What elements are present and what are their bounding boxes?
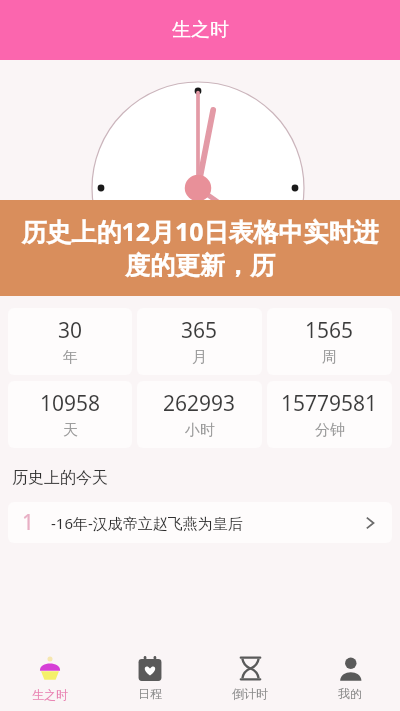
button[interactable]: 日程: [100, 645, 200, 711]
staticText: 周: [322, 348, 337, 367]
staticText: 日程: [138, 686, 162, 701]
staticText: 生之时: [172, 18, 229, 42]
staticText: 30: [58, 316, 83, 345]
staticText: 10958: [40, 389, 101, 418]
button[interactable]: 1: [8, 502, 392, 543]
staticText: 小时: [185, 421, 215, 440]
button[interactable]: 1565: [267, 308, 392, 375]
staticText: 历史上的今天: [12, 468, 108, 488]
button[interactable]: 10958: [8, 381, 132, 448]
staticText: 历史上的12月10日表格中实时进度的更新，历: [10, 214, 390, 282]
button[interactable]: 我的: [300, 645, 400, 711]
button[interactable]: 15779581: [267, 381, 392, 448]
staticText: -16年-汉成帝立赵飞燕为皇后: [51, 513, 243, 533]
staticText: 15779581: [281, 389, 378, 418]
staticText: 月: [192, 348, 207, 367]
staticText: 我的: [338, 686, 362, 701]
staticText: 1: [22, 508, 35, 537]
staticText: 在这个世界上你已经存在了: [14, 207, 194, 226]
staticText: 年: [63, 348, 78, 367]
staticText: 1565: [305, 316, 354, 345]
staticText: 分钟: [315, 421, 345, 440]
staticText: 262993: [163, 389, 236, 418]
staticText: 365: [181, 316, 218, 345]
button[interactable]: 生之时: [0, 645, 100, 711]
button[interactable]: 倒计时: [200, 645, 300, 711]
button[interactable]: 365: [137, 308, 262, 375]
staticText: 倒计时: [232, 686, 268, 701]
staticText: 天: [63, 421, 78, 440]
staticText: 生之时: [32, 687, 68, 702]
button[interactable]: 262993: [137, 381, 262, 448]
button[interactable]: 30: [8, 308, 132, 375]
